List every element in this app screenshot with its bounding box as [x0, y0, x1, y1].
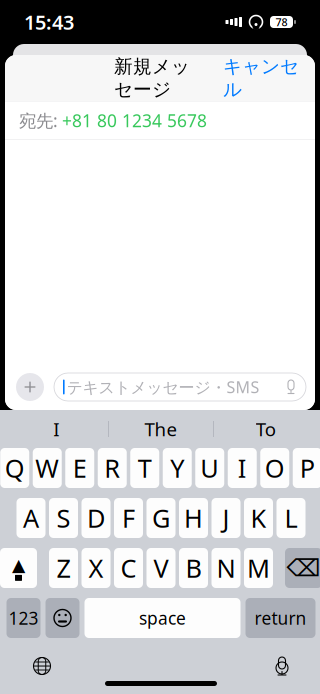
button[interactable]: X [81, 548, 110, 588]
button[interactable]: Add attachment [14, 370, 46, 404]
staticText: return [254, 606, 306, 629]
button[interactable]: O [260, 448, 289, 488]
staticText: +81 80 1234 5678 [62, 109, 207, 132]
staticText: Q [5, 451, 25, 485]
button[interactable]: Emoji [45, 598, 79, 638]
button[interactable]: M [244, 548, 273, 588]
staticText: The [144, 417, 177, 441]
button[interactable]: J [211, 498, 240, 538]
staticText: 78 [275, 15, 287, 29]
staticText: L [284, 501, 297, 535]
button[interactable]: Shift [0, 548, 37, 588]
staticText: T [138, 451, 152, 485]
button[interactable]: Z [49, 548, 78, 588]
button[interactable]: テキストメッセージ・SMS [54, 373, 306, 401]
staticText: G [152, 501, 170, 535]
button[interactable]: C [114, 548, 143, 588]
button[interactable]: space [84, 598, 240, 638]
staticText: 新規メッセージ [114, 55, 190, 101]
staticText: W [35, 451, 59, 485]
staticText: K [250, 501, 266, 535]
staticText: E [73, 451, 87, 485]
staticText: J [222, 501, 229, 535]
button[interactable]: I [4, 410, 108, 448]
staticText: S [56, 501, 70, 535]
staticText: B [185, 551, 201, 585]
staticText: H [184, 501, 203, 535]
staticText: I [238, 451, 247, 485]
button[interactable]: S [49, 498, 78, 538]
button[interactable]: L [276, 498, 305, 538]
staticText: ▲ [12, 555, 25, 575]
staticText: M [247, 551, 270, 585]
button[interactable]: 123 [6, 598, 40, 638]
button[interactable]: V [146, 548, 175, 588]
button[interactable]: A [16, 498, 45, 538]
staticText: Z [56, 551, 70, 585]
button[interactable]: The [109, 410, 213, 448]
staticText: To [256, 417, 276, 441]
button[interactable]: I [228, 448, 257, 488]
staticText: 宛先: [19, 109, 58, 132]
button[interactable]: キャンセル [213, 47, 309, 109]
staticText: F [122, 501, 135, 535]
staticText: 123 [8, 606, 38, 629]
button[interactable]: D [81, 498, 110, 538]
staticText: X [88, 551, 103, 585]
staticText: ⌫ [286, 554, 320, 582]
button[interactable]: B [179, 548, 208, 588]
staticText: V [153, 551, 168, 585]
staticText: Y [170, 451, 184, 485]
button[interactable]: Dictation [269, 651, 295, 681]
button[interactable]: N [211, 548, 240, 588]
button[interactable]: K [244, 498, 273, 538]
button[interactable]: return [245, 598, 315, 638]
staticText: C [120, 551, 136, 585]
staticText: P [300, 451, 315, 485]
staticText: U [200, 451, 219, 485]
button[interactable]: To [214, 410, 318, 448]
staticText: R [104, 451, 120, 485]
button[interactable]: Q [0, 448, 29, 488]
staticText: O [265, 451, 285, 485]
button[interactable]: G [146, 498, 175, 538]
staticText: N [216, 551, 235, 585]
button[interactable]: Delete [285, 548, 320, 588]
staticText: 15:43 [24, 9, 74, 35]
button[interactable]: U [195, 448, 224, 488]
staticText: space [139, 606, 186, 629]
staticText: キャンセル [223, 55, 299, 101]
button[interactable]: P [293, 448, 320, 488]
button[interactable]: Next keyboard [27, 651, 57, 681]
button[interactable]: W [33, 448, 62, 488]
button[interactable]: H [179, 498, 208, 538]
button[interactable]: R [98, 448, 127, 488]
staticText: D [87, 501, 105, 535]
button[interactable]: T [130, 448, 159, 488]
button[interactable]: F [114, 498, 143, 538]
staticText: テキストメッセージ・SMS [67, 376, 260, 398]
staticText: A [23, 501, 39, 535]
staticText: I [53, 417, 59, 441]
button[interactable]: Y [163, 448, 192, 488]
button[interactable]: E [65, 448, 94, 488]
button[interactable]: 宛先: [5, 101, 315, 139]
